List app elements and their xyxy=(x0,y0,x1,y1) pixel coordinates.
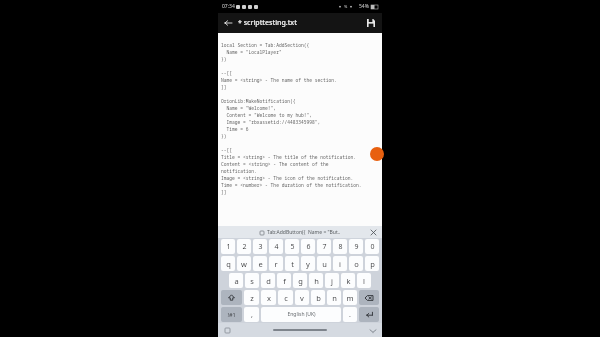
button[interactable]: n xyxy=(327,290,341,305)
button[interactable]: s xyxy=(245,273,259,288)
staticText: ]] xyxy=(221,189,380,196)
button[interactable]: 1 xyxy=(221,239,235,254)
staticText: 0 xyxy=(370,242,375,252)
button[interactable]: p xyxy=(365,256,379,271)
staticText: w xyxy=(241,259,247,269)
button[interactable]: y xyxy=(301,256,315,271)
button[interactable]: t xyxy=(285,256,299,271)
button[interactable]: x xyxy=(261,290,276,305)
staticText: q xyxy=(226,259,231,269)
button[interactable]: d xyxy=(261,273,275,288)
staticText: n xyxy=(332,293,337,303)
staticText: b xyxy=(316,293,321,303)
button[interactable]: z xyxy=(244,290,259,305)
staticText: ▾ xyxy=(350,4,353,9)
button[interactable]: Hide keyboard xyxy=(368,326,377,335)
staticText: }) xyxy=(221,56,380,63)
staticText: j xyxy=(331,276,333,286)
button[interactable]: o xyxy=(349,256,363,271)
button[interactable]: r xyxy=(269,256,283,271)
button[interactable]: i xyxy=(333,256,347,271)
button[interactable]: 5 xyxy=(285,239,299,254)
staticText: Content = <string> - The content of the xyxy=(221,161,380,168)
button[interactable]: Action xyxy=(370,147,384,161)
staticText: --[[ xyxy=(221,147,380,154)
staticText: l xyxy=(363,276,365,286)
staticText: OrionLib:MakeNotification({ xyxy=(221,98,380,105)
staticText: 4 xyxy=(274,242,279,252)
staticText: Content = "Welcome to my hub!", xyxy=(221,112,380,119)
staticText: Image = <string> - The icon of the notif… xyxy=(221,175,380,182)
staticText: g xyxy=(298,276,303,286)
button[interactable]: c xyxy=(278,290,293,305)
staticText: k xyxy=(346,276,351,286)
staticText: Name = <string> - The name of the sectio… xyxy=(221,77,380,84)
button[interactable]: 6 xyxy=(301,239,315,254)
button[interactable]: Save xyxy=(364,16,378,30)
button[interactable]: Enter xyxy=(359,307,379,322)
staticText: 5 xyxy=(290,242,295,252)
button[interactable]: u xyxy=(317,256,331,271)
button[interactable]: , xyxy=(244,307,259,322)
button[interactable]: Close suggestion xyxy=(368,227,378,237)
staticText: Image = "rbxassetid://4483345998", xyxy=(221,119,380,126)
button[interactable]: 8 xyxy=(333,239,347,254)
button[interactable]: e xyxy=(253,256,267,271)
button[interactable]: g xyxy=(293,273,307,288)
button[interactable]: 9 xyxy=(349,239,363,254)
staticText: Tab:AddButton({ Name = "But.. xyxy=(267,229,341,236)
button[interactable]: English (UK) xyxy=(261,307,341,322)
button[interactable]: q xyxy=(221,256,235,271)
staticText: notification. xyxy=(221,168,380,175)
staticText: % xyxy=(344,4,348,9)
staticText: 1 xyxy=(226,242,231,252)
staticText: local Section = Tab:AddSection({ xyxy=(221,42,380,49)
staticText: . xyxy=(349,310,351,320)
button[interactable]: l xyxy=(357,273,371,288)
button[interactable]: k xyxy=(341,273,355,288)
button[interactable]: Keyboard settings xyxy=(223,326,232,335)
staticText: }) xyxy=(221,133,380,140)
staticText: p xyxy=(370,259,375,269)
button[interactable]: f xyxy=(277,273,291,288)
button[interactable]: j xyxy=(325,273,339,288)
staticText: m xyxy=(346,293,354,303)
button[interactable]: h xyxy=(309,273,323,288)
staticText: 8 xyxy=(338,242,343,252)
staticText: i xyxy=(339,259,341,269)
button[interactable]: 4 xyxy=(269,239,283,254)
staticText: English (UK) xyxy=(287,311,316,318)
staticText: 2 xyxy=(242,242,247,252)
staticText: Time = 6 xyxy=(221,126,380,133)
button[interactable]: 2 xyxy=(237,239,251,254)
button[interactable]: b xyxy=(311,290,325,305)
staticText: --[[ xyxy=(221,70,380,77)
button[interactable]: !#1 xyxy=(221,307,242,322)
staticText: o xyxy=(354,259,359,269)
staticText: 3 xyxy=(258,242,263,252)
staticText: f xyxy=(283,276,286,286)
button[interactable]: 0 xyxy=(365,239,379,254)
staticText: d xyxy=(266,276,271,286)
button[interactable]: m xyxy=(343,290,357,305)
button[interactable]: Shift xyxy=(221,290,242,305)
button[interactable]: 3 xyxy=(253,239,267,254)
button[interactable]: a xyxy=(229,273,243,288)
staticText: 6 xyxy=(306,242,311,252)
button[interactable]: v xyxy=(295,290,309,305)
staticText: 54% xyxy=(359,3,369,10)
button[interactable]: 7 xyxy=(317,239,331,254)
staticText: x xyxy=(267,293,271,303)
button[interactable]: Back xyxy=(221,16,235,30)
staticText: r xyxy=(274,259,278,269)
button[interactable]: w xyxy=(237,256,251,271)
staticText: Name = "Welcome!", xyxy=(221,105,380,112)
button[interactable]: Backspace xyxy=(359,290,379,305)
button[interactable]: . xyxy=(343,307,357,322)
staticText: a xyxy=(234,276,239,286)
